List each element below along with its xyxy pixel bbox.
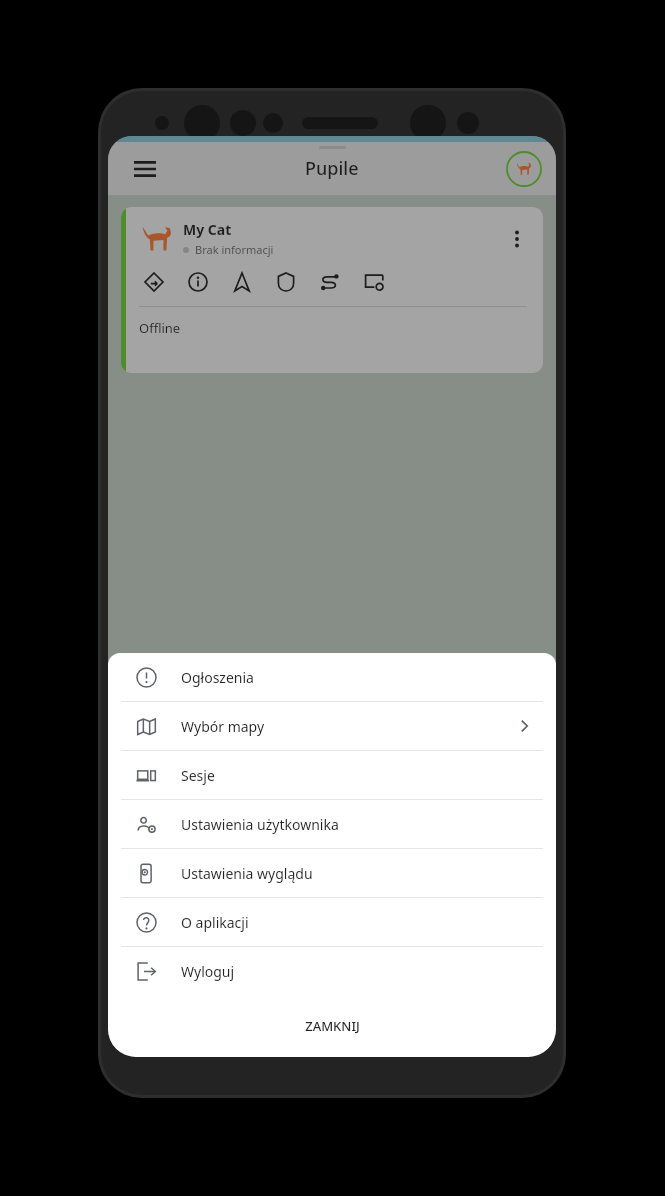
button[interactable]: Wyloguj xyxy=(108,947,556,995)
button[interactable]: More options xyxy=(501,223,533,255)
button[interactable]: Sesje xyxy=(108,751,556,799)
button[interactable]: Ustawienia wyglądu xyxy=(108,849,556,897)
staticText: O aplikacji xyxy=(181,913,249,932)
staticText: Offline xyxy=(139,319,181,337)
button[interactable]: Profile xyxy=(504,149,544,189)
button[interactable]: O aplikacji xyxy=(108,898,556,946)
staticText: ZAMKNIJ xyxy=(305,1017,360,1035)
button[interactable]: Route xyxy=(315,267,345,297)
button[interactable]: My Cat xyxy=(121,207,543,373)
button[interactable]: Direction xyxy=(227,267,257,297)
button[interactable]: Wybór mapy xyxy=(108,702,556,750)
staticText: Sesje xyxy=(181,766,215,785)
button[interactable]: Navigate xyxy=(139,267,169,297)
staticText: Wyloguj xyxy=(181,962,235,981)
button[interactable]: Safe zone xyxy=(271,267,301,297)
staticText: Ustawienia wyglądu xyxy=(181,864,313,883)
staticText: My Cat xyxy=(183,220,232,239)
button[interactable]: Ustawienia użytkownika xyxy=(108,800,556,848)
button[interactable]: ZAMKNIJ xyxy=(108,995,556,1057)
staticText: Wybór mapy xyxy=(181,717,265,736)
button[interactable]: Menu xyxy=(124,148,166,190)
staticText: Ogłoszenia xyxy=(181,668,254,687)
button[interactable]: Ogłoszenia xyxy=(108,653,556,701)
button[interactable]: Device xyxy=(359,267,389,297)
staticText: Brak informacji xyxy=(195,242,274,257)
button[interactable]: Info xyxy=(183,267,213,297)
staticText: Pupile xyxy=(305,156,359,181)
staticText: Ustawienia użytkownika xyxy=(181,815,339,834)
